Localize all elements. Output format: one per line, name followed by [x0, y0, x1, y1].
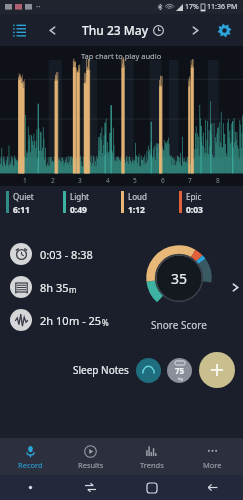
- button[interactable]: Loud: [121, 191, 179, 216]
- button[interactable]: Trends: [121, 438, 182, 475]
- button[interactable]: Mouthpiece note: [136, 358, 161, 383]
- staticText: Thu 23 May: [82, 22, 148, 38]
- staticText: 2: [51, 176, 55, 185]
- staticText: 4: [106, 176, 110, 185]
- staticText: 8h: [40, 280, 56, 295]
- staticText: 35: [171, 269, 188, 288]
- staticText: 75: [175, 365, 185, 376]
- button[interactable]: Recent apps: [60, 475, 121, 500]
- staticText: Results: [78, 460, 104, 470]
- staticText: Loud: [128, 191, 147, 202]
- staticText: 7: [188, 176, 192, 185]
- staticText: kg: [178, 376, 183, 381]
- staticText: 35: [56, 280, 69, 295]
- button[interactable]: Add: [199, 352, 235, 388]
- button[interactable]: Back: [182, 475, 243, 500]
- staticText: 6: [161, 176, 165, 185]
- button[interactable]: More details: [227, 227, 243, 347]
- button[interactable]: Tap chart to play audio: [0, 46, 243, 186]
- button[interactable]: Previous day: [42, 20, 62, 40]
- staticText: 8: [216, 176, 220, 185]
- button[interactable]: Results: [60, 438, 121, 475]
- button[interactable]: Thu 23 May: [78, 18, 168, 42]
- button[interactable]: Record: [0, 438, 60, 475]
- staticText: 0:49: [70, 204, 87, 216]
- staticText: 11:36 PM: [207, 2, 238, 12]
- button[interactable]: Light: [63, 191, 121, 216]
- staticText: 0:03: [186, 204, 203, 216]
- button[interactable]: Home: [121, 475, 182, 500]
- staticText: 17%: [185, 2, 199, 12]
- staticText: Light: [70, 191, 90, 202]
- button[interactable]: Quiet: [6, 191, 63, 216]
- staticText: Tap chart to play audio: [81, 51, 162, 61]
- staticText: ••: [36, 3, 41, 11]
- button[interactable]: Next day: [185, 20, 205, 40]
- staticText: 1:12: [128, 204, 145, 216]
- button[interactable]: 0:03 - 8:38: [0, 227, 243, 347]
- staticText: Trends: [140, 460, 164, 470]
- staticText: 0:03 - 8:38: [40, 247, 93, 262]
- staticText: 10: [56, 313, 69, 328]
- button[interactable]: Epic: [179, 191, 237, 216]
- button[interactable]: Menu: [8, 19, 30, 41]
- staticText: Quiet: [13, 191, 34, 202]
- staticText: Snore Score: [151, 318, 207, 332]
- staticText: 3: [78, 176, 82, 185]
- staticText: m: [69, 284, 77, 295]
- staticText: 6:11: [13, 204, 30, 216]
- staticText: %: [102, 317, 109, 328]
- staticText: 1: [23, 176, 27, 185]
- button[interactable]: Settings: [213, 19, 235, 41]
- button[interactable]: Weight 75 kg: [167, 358, 192, 383]
- staticText: Record: [18, 460, 43, 470]
- staticText: 2h: [40, 313, 56, 328]
- staticText: Epic: [186, 191, 202, 202]
- button[interactable]: More: [182, 438, 243, 475]
- staticText: 5: [133, 176, 137, 185]
- staticText: More: [203, 460, 222, 470]
- button[interactable]: Sleep Notes: [73, 363, 129, 377]
- staticText: m - 25: [69, 313, 102, 328]
